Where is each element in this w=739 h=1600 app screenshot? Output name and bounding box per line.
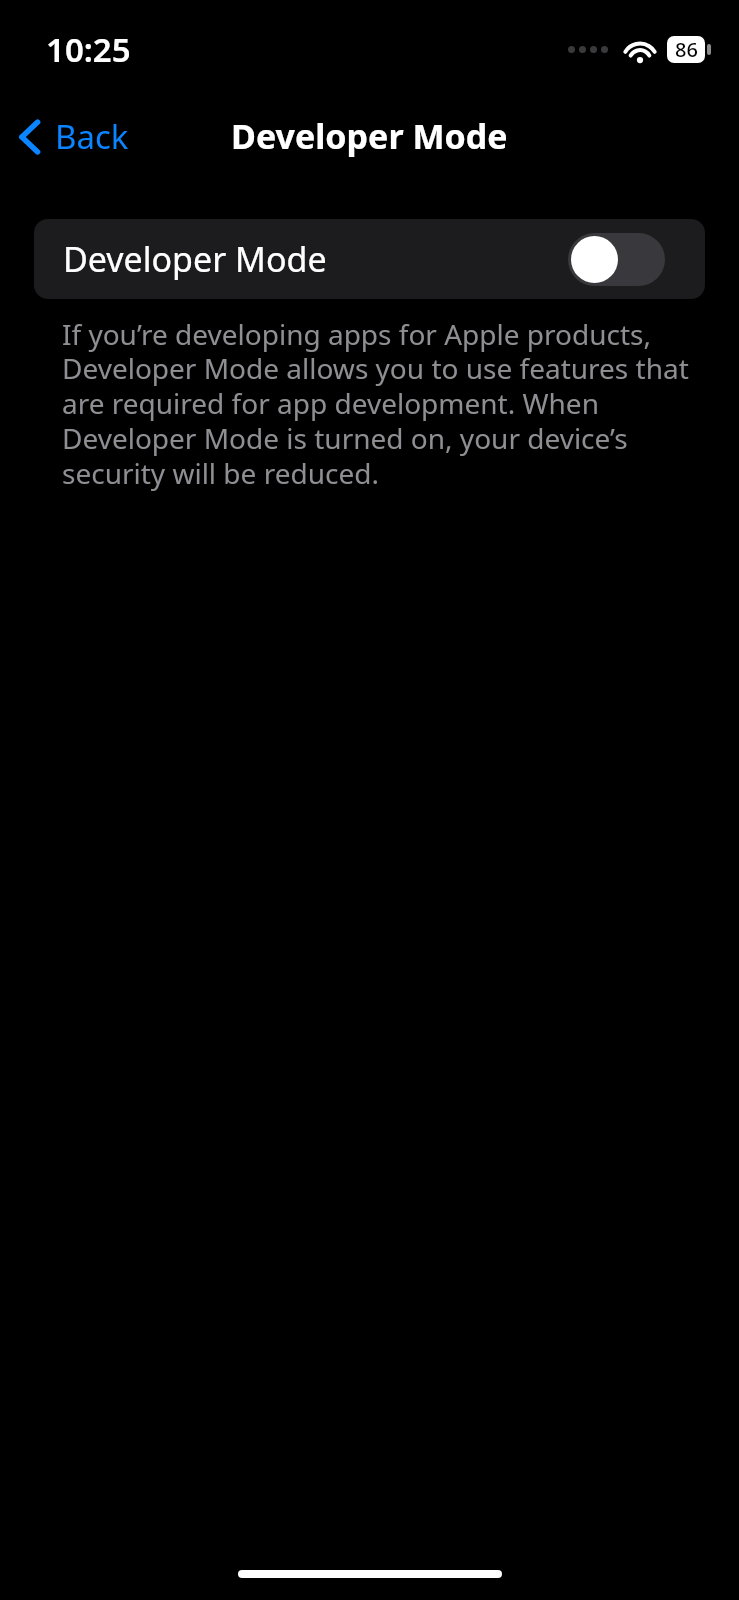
staticText: If you’re developing apps for Apple prod… <box>62 315 695 493</box>
staticText: Developer Mode <box>63 236 327 282</box>
staticText: Back <box>55 114 129 159</box>
staticText: Developer Mode <box>231 113 508 159</box>
button[interactable]: Developer Mode toggle, off <box>568 233 665 286</box>
staticText: 86 <box>675 36 698 63</box>
staticText: 10:25 <box>46 27 131 72</box>
button[interactable]: Back <box>10 108 141 165</box>
button[interactable]: Developer Mode <box>34 219 705 299</box>
